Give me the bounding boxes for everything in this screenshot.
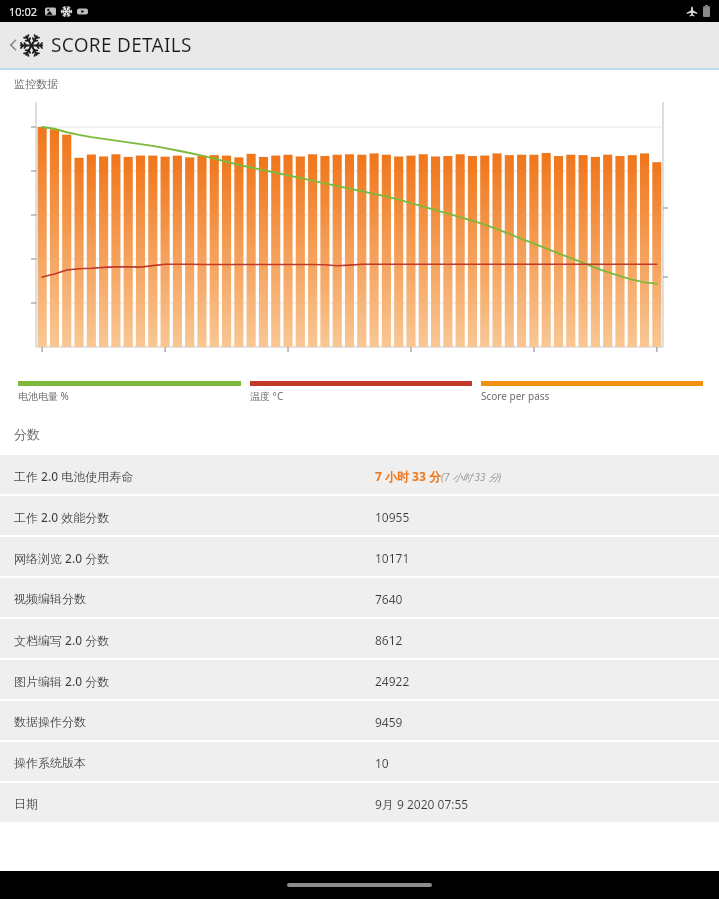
- staticText: 7640: [375, 591, 403, 607]
- staticText: 24922: [375, 673, 410, 689]
- button[interactable]: Back to score: [0, 22, 719, 68]
- button[interactable]: 图片编辑 2.0 分数: [0, 660, 719, 701]
- staticText: (7 小时 33 分): [441, 470, 502, 484]
- staticText: 10:02: [9, 4, 38, 19]
- staticText: 9月 9 2020 07:55: [375, 796, 469, 812]
- staticText: 操作系统版本: [14, 755, 86, 770]
- staticText: 9459: [375, 714, 403, 730]
- staticText: 日期: [14, 796, 38, 811]
- staticText: 图片编辑 2.0 分数: [14, 673, 110, 689]
- staticText: 分数: [14, 426, 40, 442]
- button[interactable]: 数据操作分数: [0, 701, 719, 742]
- staticText: 网络浏览 2.0 分数: [14, 550, 110, 566]
- staticText: 8612: [375, 632, 403, 648]
- staticText: 10171: [375, 550, 410, 566]
- staticText: 工作 2.0 效能分数: [14, 509, 110, 525]
- staticText: 电池电量 %: [18, 389, 69, 403]
- button[interactable]: 日期: [0, 783, 719, 824]
- button[interactable]: 视频编辑分数: [0, 578, 719, 619]
- button[interactable]: 网络浏览 2.0 分数: [0, 537, 719, 578]
- staticText: SCORE DETAILS: [51, 32, 192, 58]
- staticText: 10: [375, 755, 389, 771]
- staticText: 视频编辑分数: [14, 591, 86, 606]
- button[interactable]: 操作系统版本: [0, 742, 719, 783]
- staticText: 10955: [375, 509, 410, 525]
- staticText: 数据操作分数: [14, 714, 86, 729]
- staticText: 文档编写 2.0 分数: [14, 632, 110, 648]
- button[interactable]: 工作 2.0 效能分数: [0, 496, 719, 537]
- staticText: 工作 2.0 电池使用寿命: [14, 468, 134, 484]
- button[interactable]: 工作 2.0 电池使用寿命: [0, 455, 719, 496]
- staticText: 温度 °C: [250, 389, 284, 403]
- staticText: Score per pass: [481, 389, 550, 403]
- staticText: 监控数据: [14, 77, 58, 91]
- staticText: 7 小时 33 分: [375, 468, 441, 484]
- button[interactable]: 文档编写 2.0 分数: [0, 619, 719, 660]
